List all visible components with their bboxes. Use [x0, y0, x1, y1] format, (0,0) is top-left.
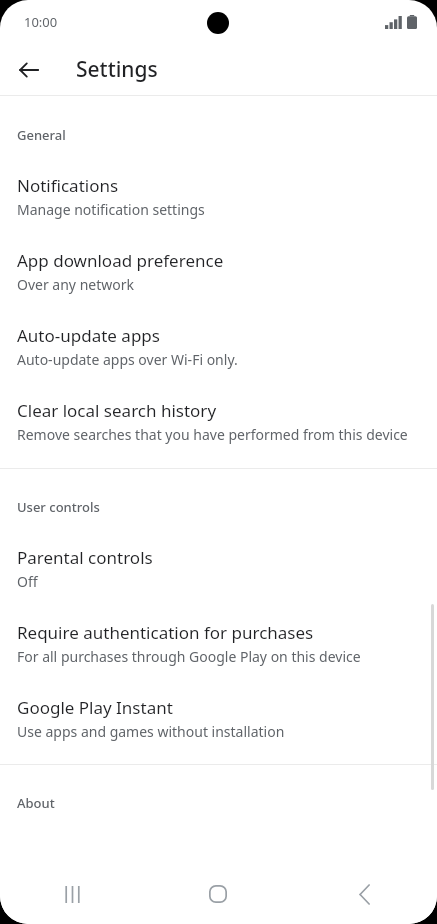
staticText: Parental controls: [17, 546, 153, 569]
staticText: Manage notification settings: [17, 200, 205, 219]
staticText: Auto-update apps over Wi-Fi only.: [17, 350, 238, 369]
staticText: Notifications: [17, 174, 119, 197]
button[interactable]: Notifications: [0, 144, 437, 219]
button[interactable]: App download preference: [0, 219, 437, 294]
staticText: Settings: [76, 55, 158, 84]
staticText: Auto-update apps: [17, 324, 160, 347]
staticText: 10:00: [24, 13, 58, 31]
button[interactable]: Require authentication for purchases: [0, 591, 437, 666]
button[interactable]: Auto-update apps: [0, 294, 437, 369]
staticText: Off: [17, 572, 38, 591]
button[interactable]: Google Play Instant: [0, 666, 437, 741]
button[interactable]: Clear local search history: [0, 369, 437, 444]
staticText: Clear local search history: [17, 399, 217, 422]
staticText: Over any network: [17, 275, 134, 294]
staticText: Google Play Instant: [17, 696, 173, 719]
staticText: App download preference: [17, 249, 224, 272]
staticText: Remove searches that you have performed …: [17, 425, 408, 444]
staticText: Use apps and games without installation: [17, 722, 285, 741]
button[interactable]: Back: [291, 864, 437, 924]
button[interactable]: Home: [145, 864, 291, 924]
staticText: About: [17, 794, 55, 812]
button[interactable]: Recent apps: [0, 864, 145, 924]
button[interactable]: Back: [7, 48, 51, 92]
staticText: Require authentication for purchases: [17, 621, 314, 644]
staticText: For all purchases through Google Play on…: [17, 647, 361, 666]
staticText: User controls: [17, 498, 100, 516]
staticText: General: [17, 126, 66, 144]
button[interactable]: Parental controls: [0, 516, 437, 591]
